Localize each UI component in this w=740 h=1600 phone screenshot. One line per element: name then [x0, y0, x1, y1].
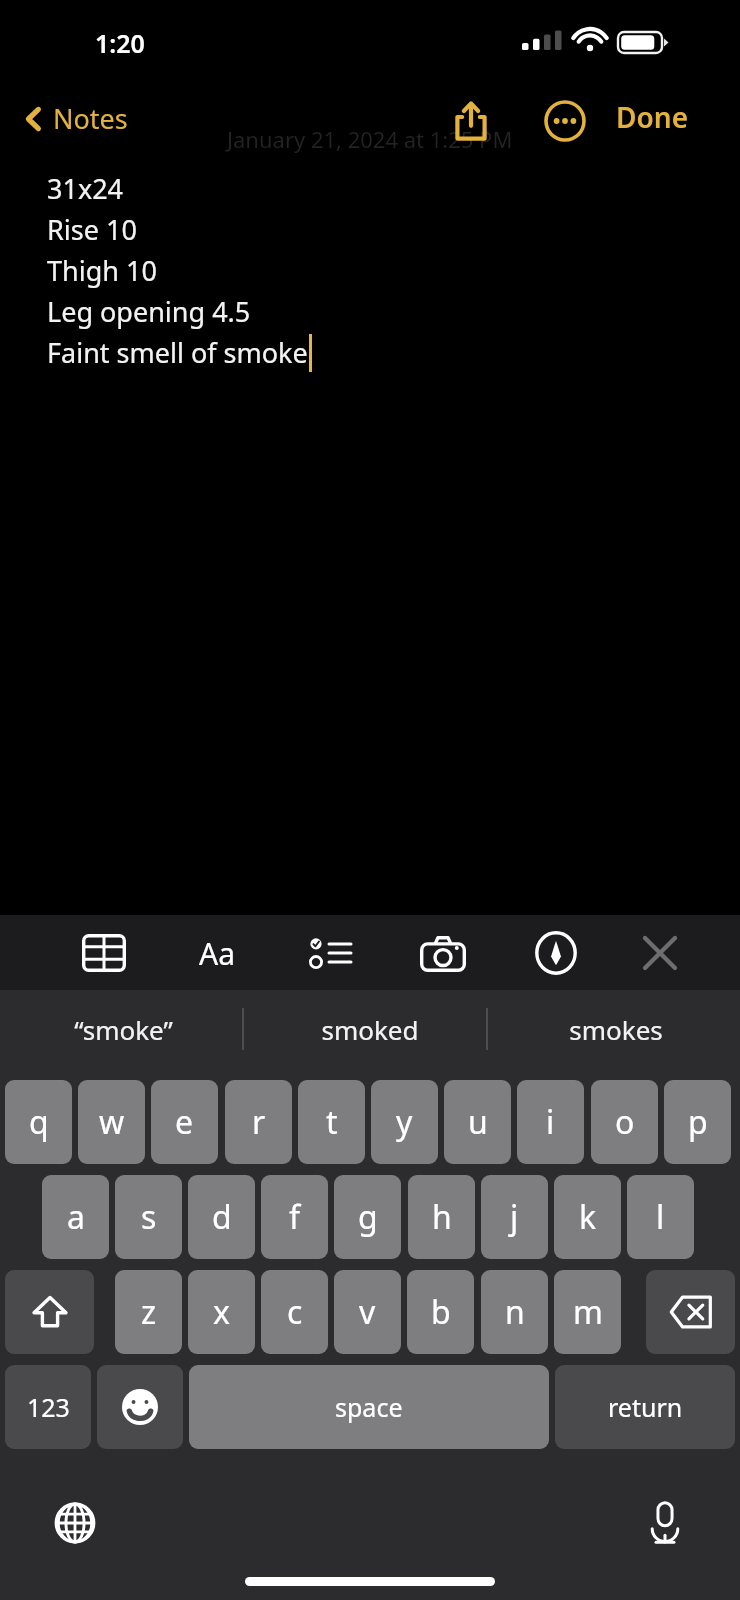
- button[interactable]: w: [78, 1080, 145, 1164]
- button[interactable]: p: [664, 1080, 731, 1164]
- button[interactable]: d: [188, 1175, 255, 1259]
- button[interactable]: n: [481, 1270, 548, 1354]
- staticText: return: [608, 1390, 683, 1424]
- button[interactable]: Shift: [5, 1270, 94, 1354]
- staticText: h: [432, 1195, 452, 1239]
- staticText: Leg opening 4.5: [47, 293, 251, 330]
- button[interactable]: x: [188, 1270, 255, 1354]
- staticText: space: [335, 1390, 403, 1424]
- button[interactable]: y: [371, 1080, 438, 1164]
- staticText: o: [615, 1100, 635, 1144]
- staticText: Done: [616, 98, 689, 136]
- staticText: smokes: [569, 1012, 663, 1047]
- staticText: Aa: [199, 933, 235, 974]
- staticText: l: [656, 1195, 665, 1239]
- button[interactable]: smoked: [247, 990, 493, 1068]
- button[interactable]: “smoke”: [0, 990, 246, 1068]
- button[interactable]: t: [298, 1080, 365, 1164]
- staticText: r: [252, 1100, 266, 1144]
- button[interactable]: g: [334, 1175, 401, 1259]
- staticText: f: [289, 1195, 301, 1239]
- staticText: 1:20: [95, 26, 145, 60]
- staticText: j: [510, 1195, 519, 1239]
- button[interactable]: Table: [67, 921, 141, 985]
- button[interactable]: Emoji: [97, 1365, 183, 1449]
- button[interactable]: q: [5, 1080, 72, 1164]
- button[interactable]: smokes: [493, 990, 739, 1068]
- button[interactable]: Close keyboard: [623, 921, 697, 985]
- button[interactable]: More options: [534, 90, 596, 152]
- staticText: v: [359, 1290, 376, 1334]
- staticText: t: [326, 1100, 338, 1144]
- button[interactable]: Done: [608, 92, 697, 142]
- button[interactable]: c: [261, 1270, 328, 1354]
- button[interactable]: o: [591, 1080, 658, 1164]
- button[interactable]: Dictate: [630, 1488, 700, 1558]
- button[interactable]: Checklist: [293, 921, 367, 985]
- staticText: 123: [27, 1390, 70, 1424]
- staticText: 31x24: [47, 170, 124, 207]
- button[interactable]: Camera: [406, 921, 480, 985]
- button[interactable]: Markup: [519, 921, 593, 985]
- staticText: n: [505, 1290, 525, 1334]
- staticText: smoked: [321, 1012, 419, 1047]
- button[interactable]: Share: [440, 90, 502, 152]
- staticText: Notes: [53, 100, 128, 137]
- staticText: g: [358, 1195, 378, 1239]
- staticText: k: [579, 1195, 597, 1239]
- button[interactable]: i: [517, 1080, 584, 1164]
- staticText: p: [688, 1100, 708, 1144]
- staticText: January 21, 2024 at 1:25 PM: [227, 124, 513, 154]
- staticText: u: [468, 1100, 488, 1144]
- button[interactable]: Change keyboard: [40, 1488, 110, 1558]
- button[interactable]: l: [627, 1175, 694, 1259]
- button[interactable]: space: [189, 1365, 549, 1449]
- button[interactable]: b: [407, 1270, 474, 1354]
- button[interactable]: s: [115, 1175, 182, 1259]
- staticText: Rise 10: [47, 211, 137, 248]
- button[interactable]: j: [481, 1175, 548, 1259]
- button[interactable]: a: [42, 1175, 109, 1259]
- button[interactable]: Numbers: [5, 1365, 91, 1449]
- button[interactable]: e: [151, 1080, 218, 1164]
- button[interactable]: k: [554, 1175, 621, 1259]
- staticText: y: [396, 1100, 413, 1144]
- staticText: “smoke”: [74, 1012, 173, 1047]
- staticText: w: [99, 1100, 125, 1144]
- button[interactable]: u: [444, 1080, 511, 1164]
- staticText: x: [213, 1290, 230, 1334]
- button[interactable]: z: [115, 1270, 182, 1354]
- staticText: a: [67, 1195, 85, 1239]
- button[interactable]: r: [225, 1080, 292, 1164]
- staticText: Thigh 10: [47, 252, 157, 289]
- button[interactable]: Format: [180, 921, 254, 985]
- button[interactable]: f: [261, 1175, 328, 1259]
- button[interactable]: h: [408, 1175, 475, 1259]
- staticText: m: [573, 1290, 603, 1334]
- button[interactable]: m: [554, 1270, 621, 1354]
- button[interactable]: return: [555, 1365, 735, 1449]
- button[interactable]: Notes: [18, 96, 134, 141]
- staticText: s: [141, 1195, 157, 1239]
- staticText: q: [29, 1100, 49, 1144]
- staticText: i: [546, 1100, 555, 1144]
- staticText: b: [431, 1290, 451, 1334]
- staticText: c: [287, 1290, 303, 1334]
- button[interactable]: Backspace: [646, 1270, 735, 1354]
- button[interactable]: v: [334, 1270, 401, 1354]
- staticText: z: [141, 1290, 157, 1334]
- staticText: d: [212, 1195, 232, 1239]
- staticText: e: [175, 1100, 194, 1144]
- staticText: Faint smell of smoke: [47, 334, 308, 371]
